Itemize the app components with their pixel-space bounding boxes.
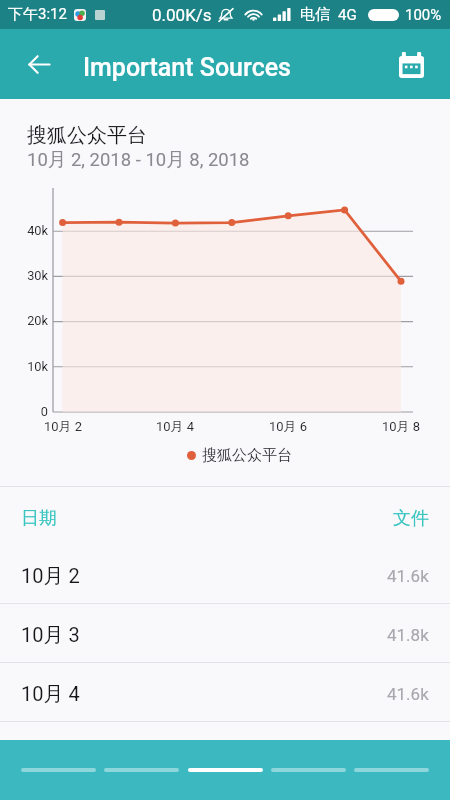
- staticText: 100%: [405, 6, 442, 24]
- staticText: 4G: [338, 6, 357, 24]
- staticText: 10月 4: [21, 682, 80, 707]
- staticText: Important Sources: [83, 53, 291, 82]
- button[interactable]: Calendar: [389, 42, 433, 86]
- staticText: 41.6k: [387, 566, 429, 586]
- staticText: 20k: [1, 313, 48, 328]
- button[interactable]: 10月 3: [0, 604, 450, 663]
- button[interactable]: Tab 4: [271, 750, 346, 790]
- staticText: 10月 2, 2018 - 10月 8, 2018: [27, 148, 250, 171]
- staticText: 10k: [1, 359, 48, 374]
- button[interactable]: 10月 4: [0, 663, 450, 722]
- staticText: 日期: [21, 507, 57, 530]
- staticText: 10月 6: [248, 418, 328, 434]
- staticText: 10月 2: [23, 418, 103, 434]
- button[interactable]: Tab 3: [188, 750, 263, 790]
- staticText: 搜狐公众平台: [27, 123, 147, 148]
- staticText: 10月 8: [361, 418, 441, 434]
- button[interactable]: Tab 1: [21, 750, 96, 790]
- staticText: 10月 2: [21, 564, 80, 589]
- button[interactable]: 10月 2: [0, 545, 450, 604]
- button[interactable]: Tab 5: [354, 750, 429, 790]
- staticText: 0.00K/s: [152, 5, 212, 25]
- staticText: 文件: [393, 507, 429, 530]
- staticText: 0: [1, 404, 48, 419]
- button[interactable]: Tab 2: [104, 750, 179, 790]
- staticText: 电信: [300, 5, 330, 24]
- staticText: 41.6k: [387, 684, 429, 704]
- staticText: 40k: [1, 223, 48, 238]
- button[interactable]: Back: [17, 42, 61, 86]
- staticText: 下午3:12: [8, 5, 67, 24]
- staticText: 41.8k: [387, 625, 429, 645]
- staticText: 30k: [1, 268, 48, 283]
- staticText: 10月 4: [135, 418, 215, 434]
- staticText: 搜狐公众平台: [202, 446, 292, 465]
- staticText: 10月 3: [21, 623, 80, 648]
